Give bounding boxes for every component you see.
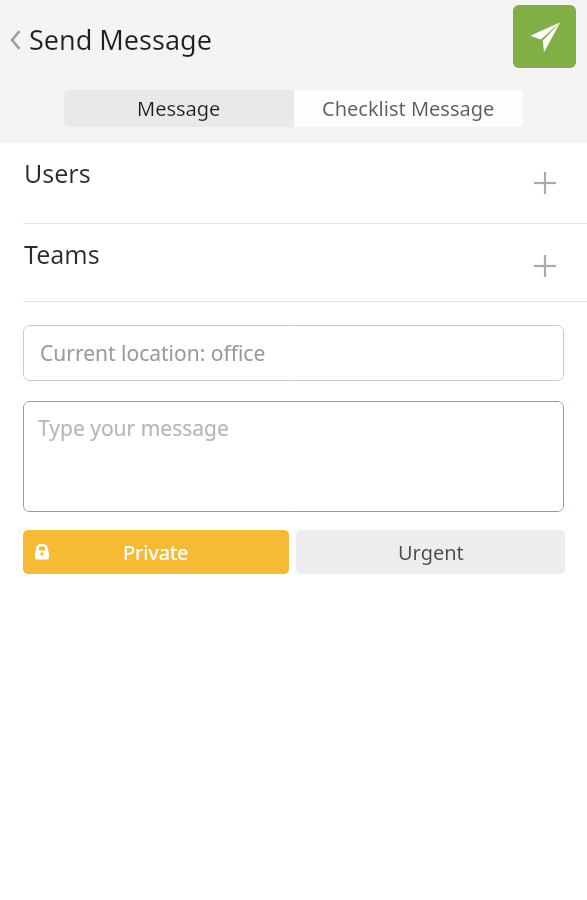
staticText: Current location: office (40, 339, 266, 368)
button[interactable]: Urgent (296, 530, 565, 574)
staticText: Message (137, 95, 221, 122)
button[interactable]: Send (513, 5, 576, 68)
staticText: Send Message (29, 21, 212, 58)
staticText: Checklist Message (322, 95, 495, 122)
button[interactable]: Users (0, 143, 587, 223)
button[interactable]: Current location: office (23, 325, 564, 381)
staticText: Teams (24, 237, 100, 271)
staticText: Users (24, 156, 91, 190)
button[interactable]: Add (534, 172, 556, 194)
button[interactable]: Checklist Message (294, 90, 523, 127)
button[interactable]: Type your message (23, 401, 564, 512)
button[interactable]: Message (64, 90, 294, 127)
staticText: Private (123, 539, 189, 566)
button[interactable]: Teams (0, 224, 587, 301)
button[interactable]: Add (534, 255, 556, 277)
button[interactable]: Private (23, 530, 289, 574)
staticText: Urgent (398, 539, 464, 566)
staticText: Type your message (38, 414, 229, 443)
button[interactable]: Back (4, 17, 217, 62)
